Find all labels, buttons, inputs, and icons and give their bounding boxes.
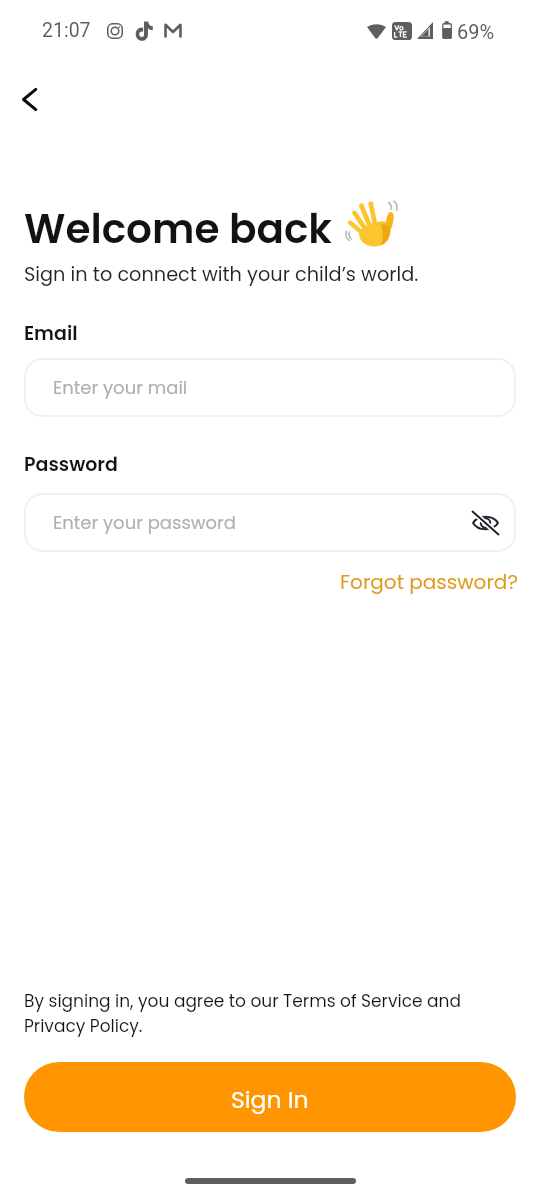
staticText: 69% [457,20,495,43]
staticText: By signing in, you agree to our Terms of… [24,989,486,1038]
staticText: Sign In [231,1083,309,1116]
button[interactable]: Enter your mail [24,358,516,417]
button[interactable]: Enter your password [24,493,516,552]
button[interactable]: Show password [467,505,503,541]
staticText: Email [24,320,78,347]
staticText: 21:07 [42,19,91,42]
staticText: Password [24,451,118,478]
button[interactable]: Back [6,76,53,123]
button[interactable]: Sign In [24,1062,516,1132]
staticText: Enter your password [53,510,236,535]
staticText: Enter your mail [53,375,188,400]
button[interactable]: Forgot password? [336,564,522,600]
staticText: Welcome back [24,200,332,248]
staticText: Sign in to connect with your child’s wor… [24,261,419,288]
